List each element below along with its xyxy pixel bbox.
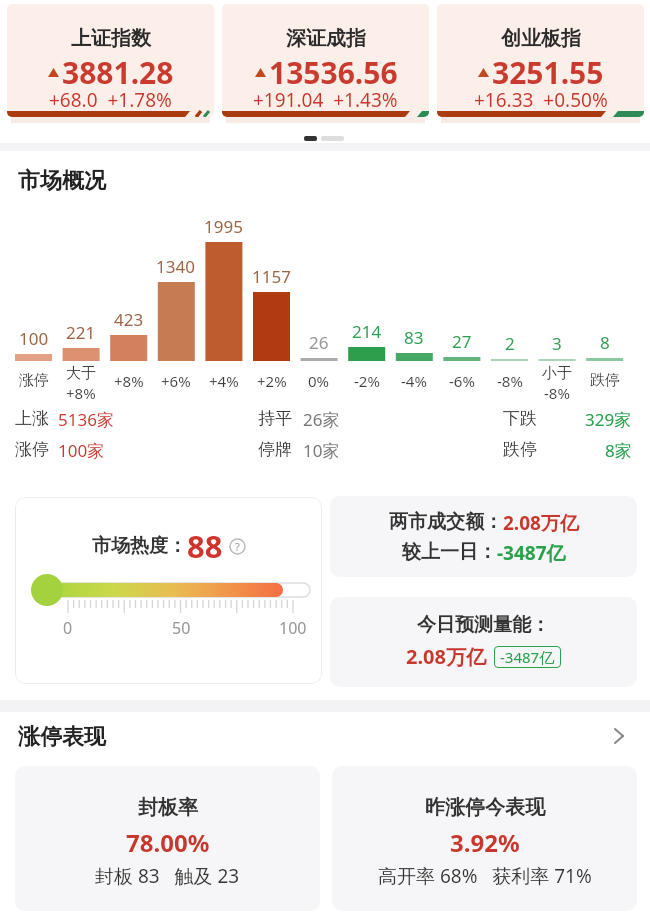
staticText: 423 [114,308,144,331]
staticText: 2.08万亿 [406,643,486,670]
staticText: 3251.55 [492,52,604,93]
staticText: -3487亿 [500,647,555,667]
staticText: +68.0 +1.78% [49,87,172,113]
staticText: 深证成指 [286,26,366,51]
staticText: -6% [449,371,475,391]
staticText: 下跌 [503,408,537,429]
staticText: 大于 [66,364,96,383]
button[interactable]: 今日预测量能： [330,597,637,687]
button[interactable]: 涨停表现 [0,718,650,754]
staticText: 13536.56 [269,52,398,93]
staticText: 高开率 68% 获利率 71% [378,863,592,889]
staticText: 221 [66,321,96,344]
button[interactable]: 创业板指 [437,4,644,117]
staticText: 市场概况 [18,167,106,195]
staticText: +8% [66,383,96,403]
staticText: 214 [352,320,382,343]
staticText: 今日预测量能： [417,613,550,637]
staticText: -8% [497,371,523,391]
staticText: +6% [161,371,191,391]
staticText: 涨停 [15,439,49,460]
staticText: 1340 [156,255,195,278]
staticText: 停牌 [258,439,292,460]
staticText: 涨停 [19,371,49,390]
button[interactable]: 两市成交额： [330,496,637,577]
staticText: 2.08万亿 [503,510,579,536]
staticText: 跌停 [503,439,537,460]
staticText: 1157 [252,265,291,288]
staticText: +191.04 +1.43% [253,87,398,113]
staticText: 83 [404,326,424,349]
button[interactable]: 市场热度： [15,497,322,684]
staticText: 50 [172,617,191,639]
staticText: -3487亿 [497,540,566,566]
staticText: +8% [114,371,144,391]
staticText: -4% [401,371,427,391]
staticText: 跌停 [590,371,620,390]
staticText: 3 [552,332,562,355]
staticText: 100家 [58,439,105,462]
staticText: 329家 [585,408,632,431]
button[interactable]: 深证成指 [222,4,429,117]
staticText: 上证指数 [71,26,151,51]
button[interactable]: 上证指数 [7,4,214,117]
staticText: ? [235,539,240,554]
staticText: 27 [452,330,472,353]
staticText: 100 [279,617,307,639]
staticText: 创业板指 [501,26,581,51]
staticText: 0 [63,617,73,639]
staticText: 5136家 [58,408,114,431]
staticText: 封板 83 触及 23 [95,863,240,889]
staticText: 两市成交额： [389,510,503,534]
staticText: 1995 [204,215,243,238]
staticText: 市场热度： [92,534,187,558]
staticText: 涨停表现 [18,723,106,751]
staticText: +4% [209,371,239,391]
staticText: 26家 [303,408,340,431]
staticText: 10家 [303,439,340,462]
button[interactable]: 封板率 [15,766,320,911]
staticText: 8家 [605,439,632,462]
staticText: 持平 [258,408,292,429]
staticText: +16.33 +0.50% [474,87,608,113]
staticText: 昨涨停今表现 [425,795,545,820]
button[interactable]: 昨涨停今表现 [332,766,637,911]
staticText: 3881.28 [62,52,174,93]
staticText: +2% [257,371,287,391]
staticText: 26 [309,331,329,354]
staticText: 78.00% [126,826,210,859]
staticText: 0% [308,371,330,391]
staticText: 较上一日： [402,540,497,564]
staticText: 上涨 [15,408,49,429]
staticText: 小于 [542,364,572,383]
staticText: 封板率 [138,795,198,820]
staticText: 3.92% [450,826,520,859]
staticText: -8% [544,383,570,403]
staticText: 8 [600,331,610,354]
staticText: 100 [19,327,49,350]
staticText: 88 [187,525,223,567]
staticText: 2 [505,332,515,355]
staticText: -2% [354,371,380,391]
